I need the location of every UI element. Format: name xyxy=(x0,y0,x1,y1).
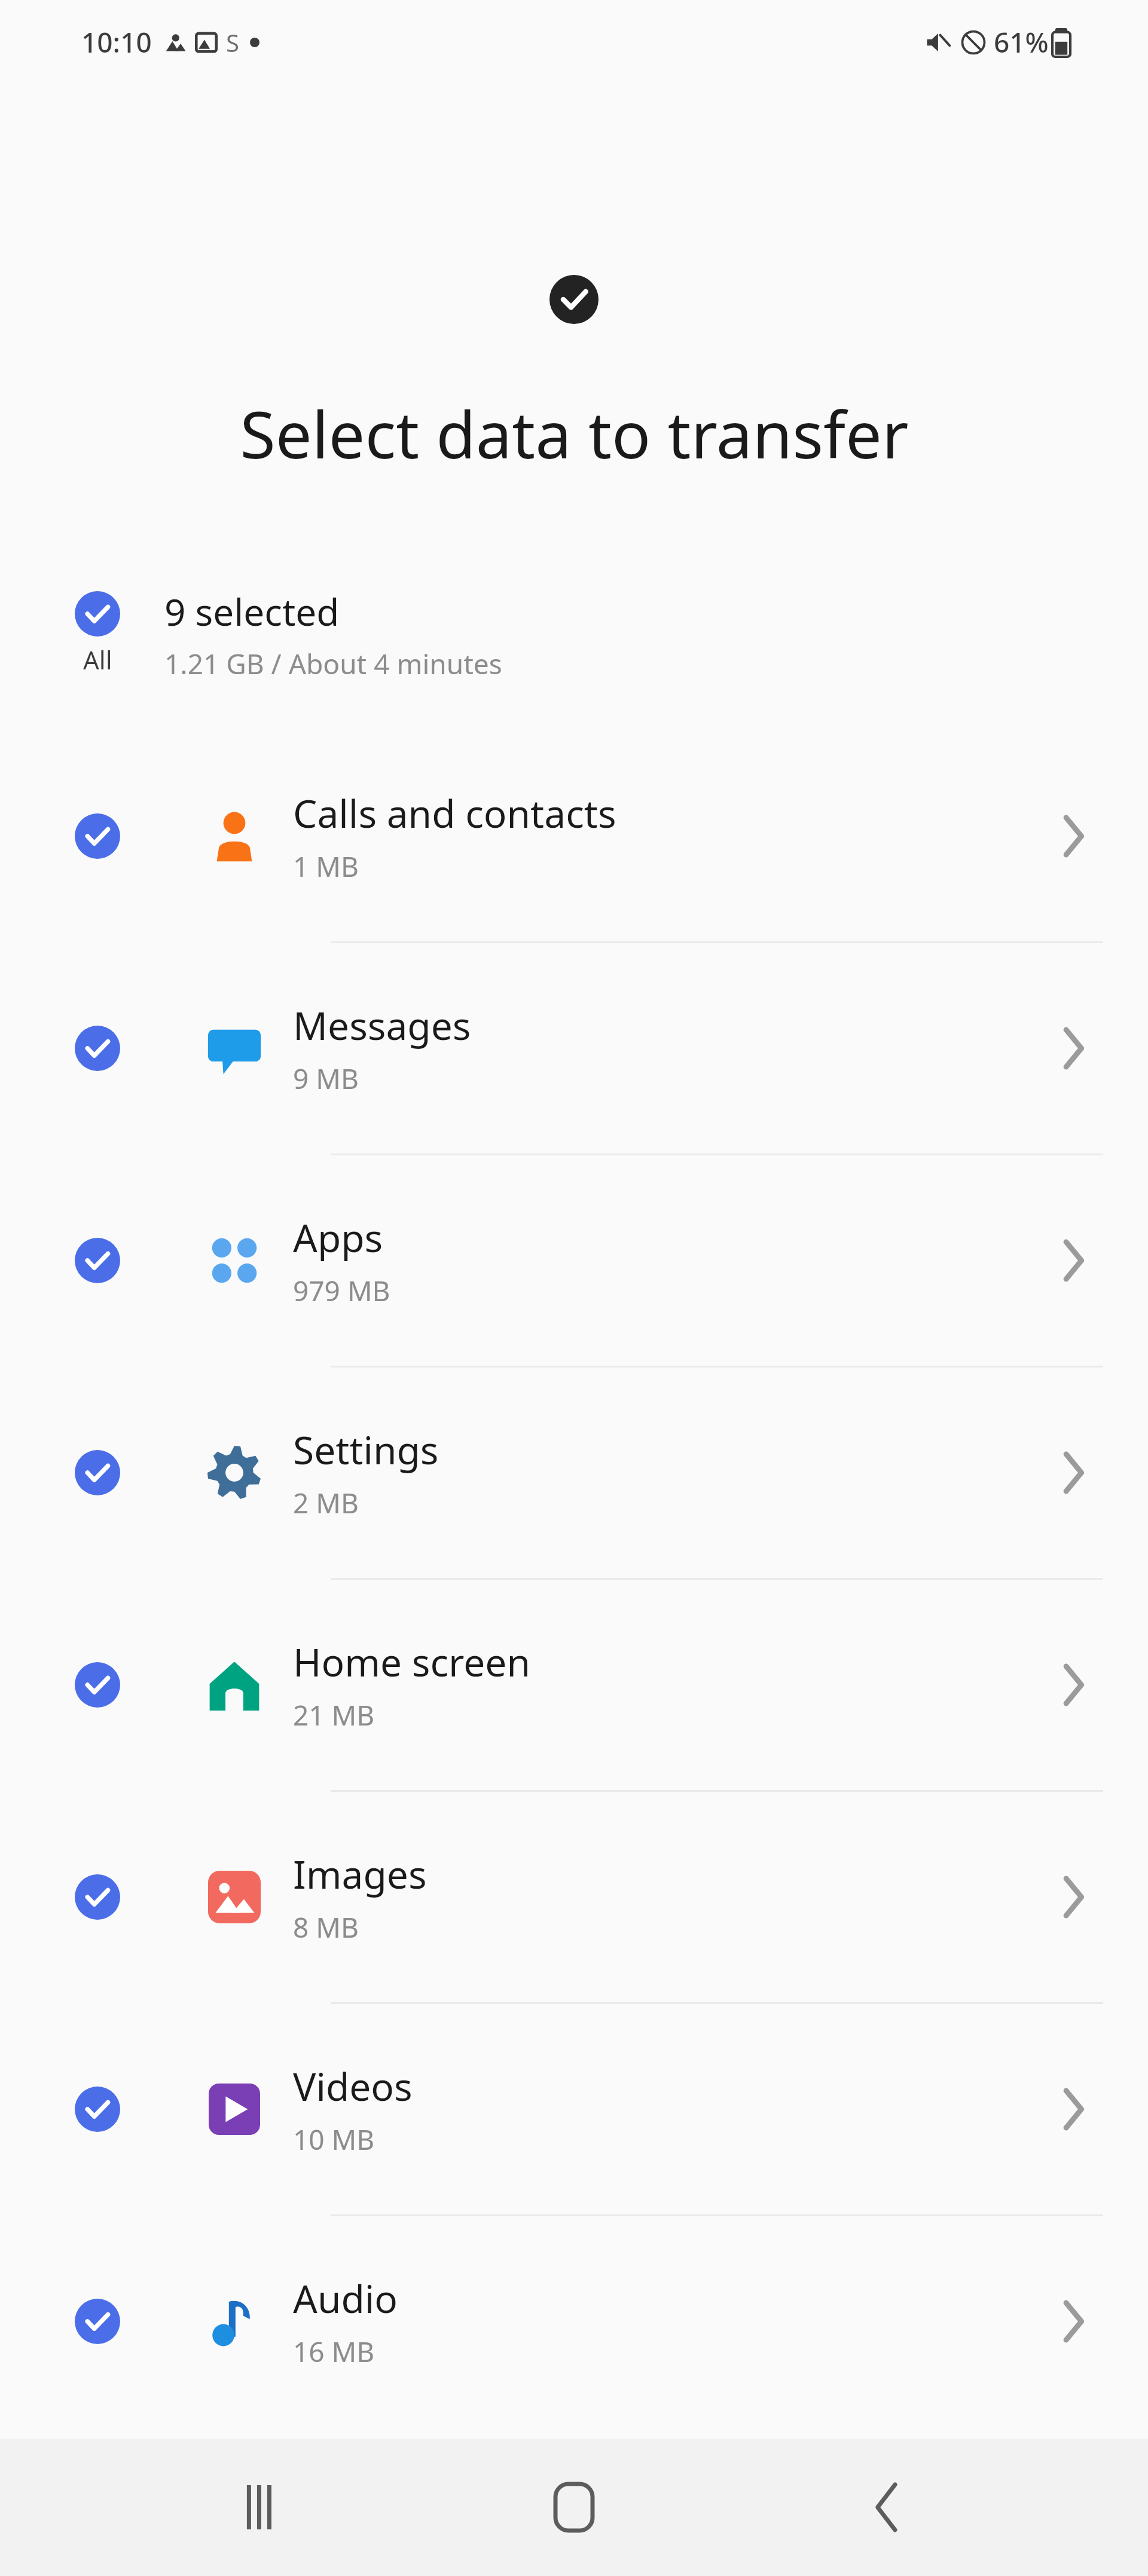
button[interactable]: All xyxy=(0,580,1148,706)
button[interactable]: Settings xyxy=(0,1367,1148,1578)
button[interactable]: Back xyxy=(836,2456,938,2558)
button[interactable]: Apps xyxy=(0,1155,1148,1366)
staticText: Images xyxy=(293,1848,427,1900)
staticText: 979 MB xyxy=(293,1272,390,1310)
button[interactable]: Calls and contacts xyxy=(0,731,1148,941)
button[interactable]: Messages xyxy=(0,943,1148,1154)
staticText: 16 MB xyxy=(293,2333,375,2370)
button[interactable]: Open Settings details xyxy=(1037,1437,1109,1509)
button[interactable]: Home xyxy=(523,2456,625,2558)
staticText: Videos xyxy=(293,2060,413,2112)
staticText: Home screen xyxy=(293,1636,530,1688)
button[interactable]: Open Images details xyxy=(1037,1861,1109,1933)
staticText: Apps xyxy=(293,1211,383,1263)
staticText: 21 MB xyxy=(293,1696,375,1734)
staticText: 2 MB xyxy=(293,1484,359,1522)
staticText: 1.21 GB / About 4 minutes xyxy=(164,645,502,683)
button[interactable]: Open Audio details xyxy=(1037,2286,1109,2357)
staticText: 8 MB xyxy=(293,1908,359,1946)
staticText: Select data to transfer xyxy=(240,390,909,478)
staticText: Messages xyxy=(293,999,471,1051)
button[interactable]: Open Apps details xyxy=(1037,1225,1109,1296)
staticText: Settings xyxy=(293,1424,439,1476)
button[interactable]: Audio xyxy=(0,2216,1148,2427)
staticText: 9 selected xyxy=(164,586,340,637)
button[interactable]: Open Videos details xyxy=(1037,2073,1109,2145)
staticText: 10 MB xyxy=(293,2121,375,2158)
button[interactable]: Home screen xyxy=(0,1580,1148,1790)
staticText: S xyxy=(226,26,239,59)
button[interactable]: Recent apps xyxy=(211,2456,313,2558)
staticText: Audio xyxy=(293,2272,398,2324)
button[interactable]: Images xyxy=(0,1792,1148,2002)
button[interactable]: Open Messages details xyxy=(1037,1012,1109,1084)
staticText: Calls and contacts xyxy=(293,787,616,839)
button[interactable]: Open Home screen details xyxy=(1037,1649,1109,1721)
button[interactable]: Open Calls and contacts details xyxy=(1037,800,1109,872)
staticText: All xyxy=(83,643,112,677)
button[interactable]: Videos xyxy=(0,2004,1148,2214)
staticText: 9 MB xyxy=(293,1060,359,1097)
staticText: 10:10 xyxy=(81,23,152,61)
staticText: 61% xyxy=(994,23,1049,61)
staticText: 1 MB xyxy=(293,848,359,885)
